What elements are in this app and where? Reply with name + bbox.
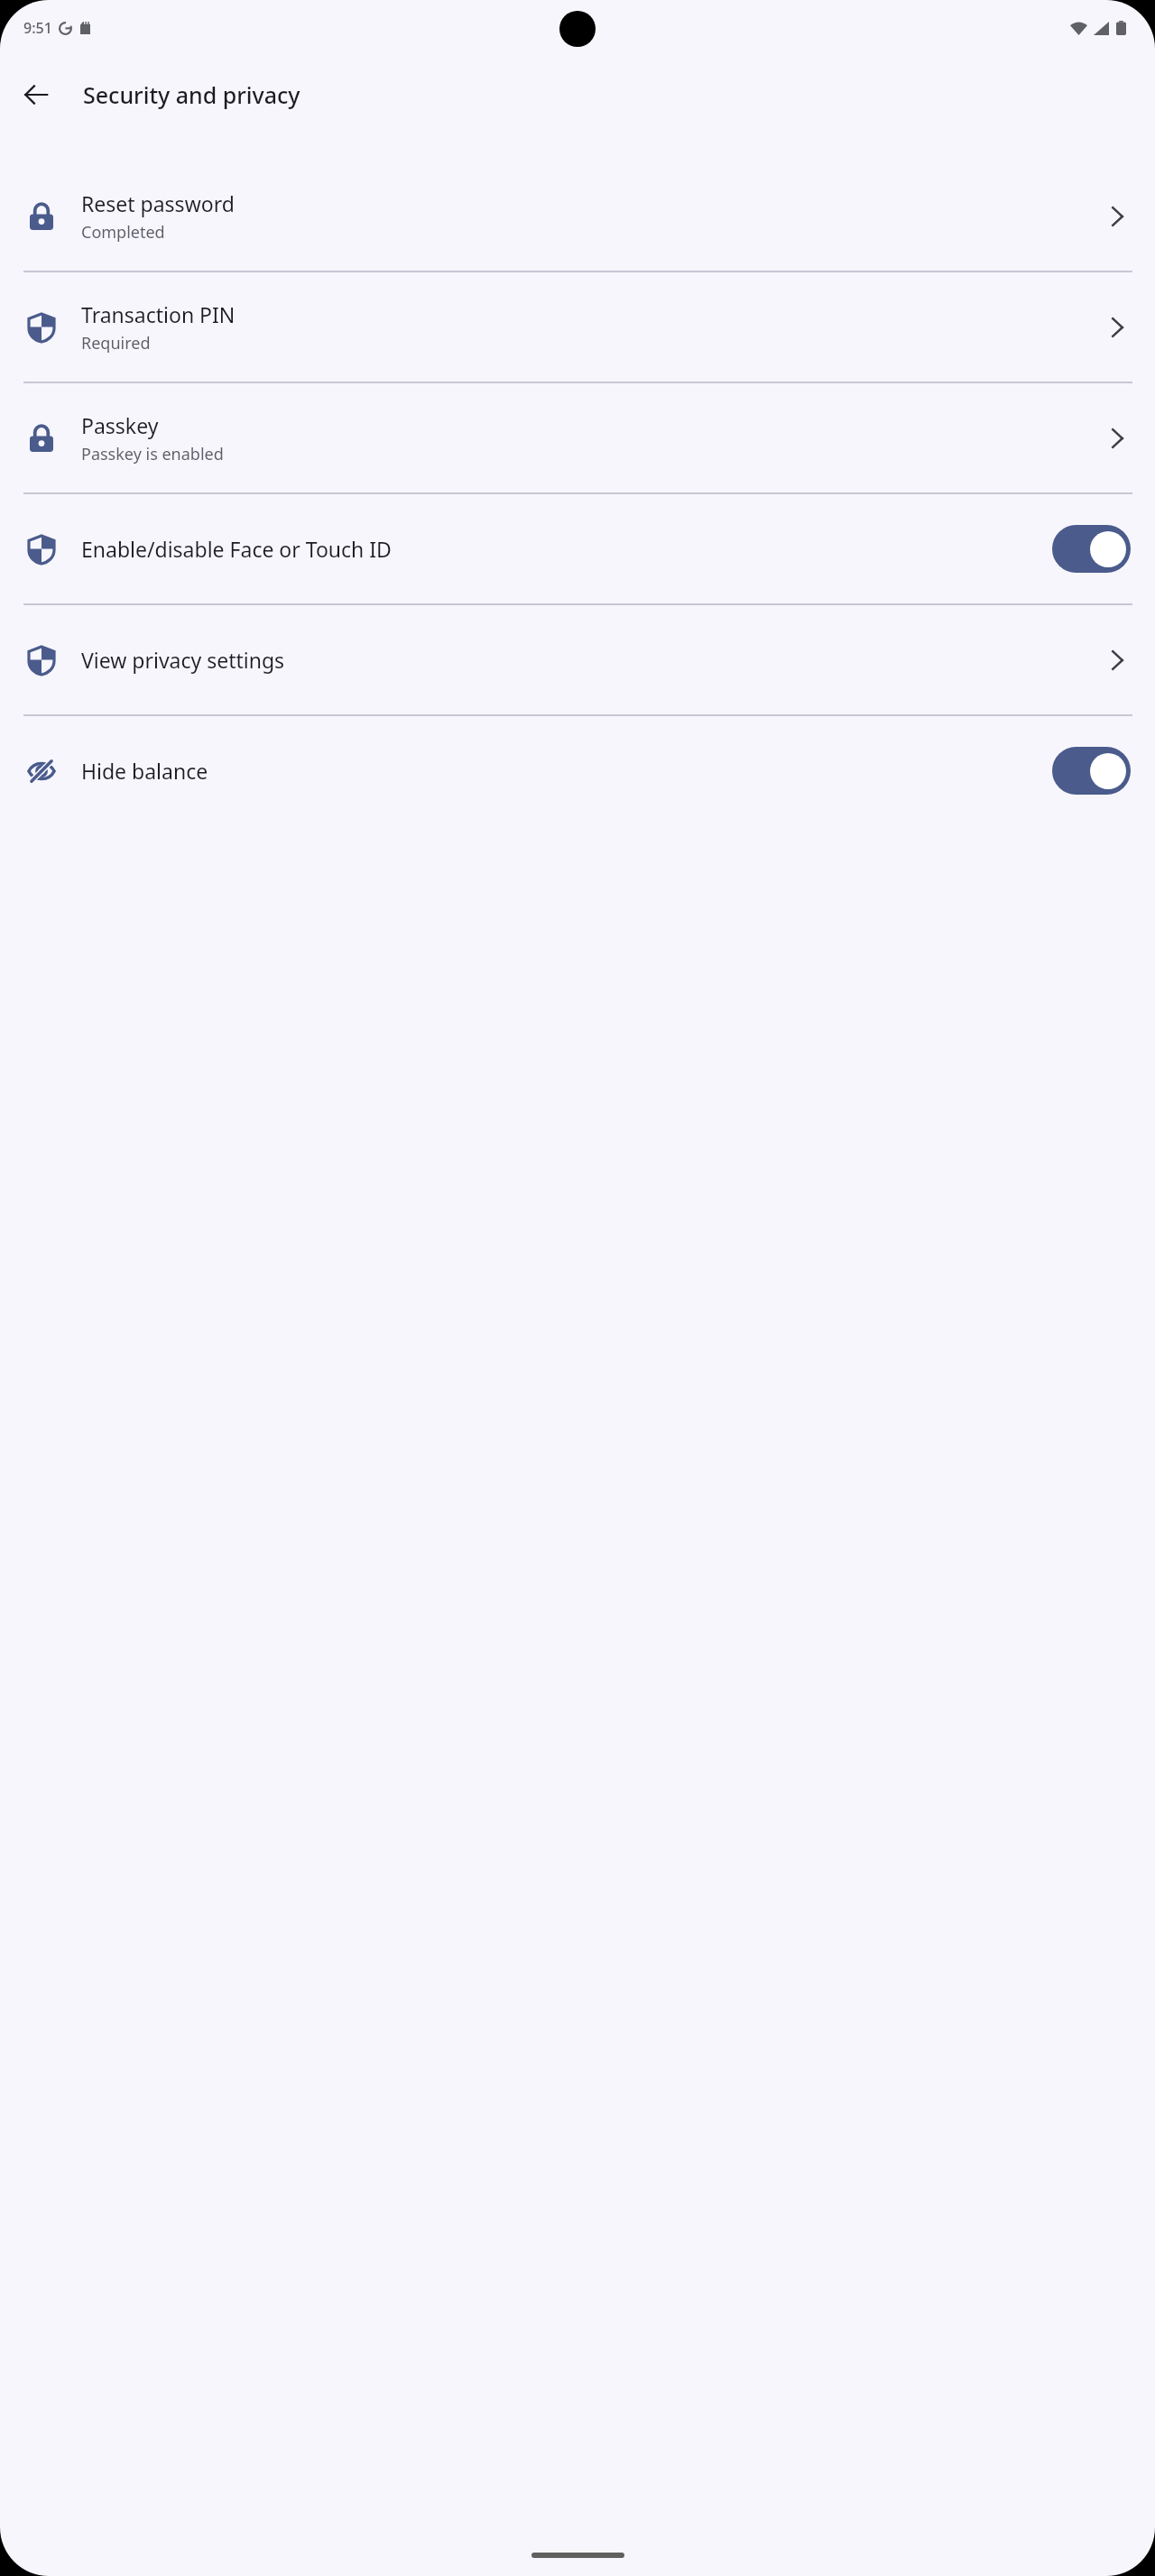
staticText: Passkey: [81, 411, 159, 439]
staticText: Completed: [81, 221, 165, 244]
staticText: Reset password: [81, 189, 235, 217]
staticText: Security and privacy: [83, 79, 300, 110]
staticText: 9:51: [23, 18, 52, 38]
other: Open Transaction PIN: [1104, 314, 1131, 341]
button[interactable]: Hide balance: [0, 716, 1155, 825]
button[interactable]: Back: [11, 69, 61, 120]
staticText: Passkey is enabled: [81, 443, 224, 465]
staticText: View privacy settings: [81, 646, 285, 674]
other: Open View privacy settings: [1104, 647, 1131, 674]
button[interactable]: View privacy settings: [0, 605, 1155, 714]
button[interactable]: Hide balance toggle, on: [1052, 747, 1131, 795]
button[interactable]: Passkey: [0, 383, 1155, 492]
button[interactable]: Enable/disable Face or Touch ID: [0, 494, 1155, 603]
staticText: Required: [81, 332, 151, 354]
other: Open Passkey: [1104, 425, 1131, 452]
button[interactable]: Enable/disable Face or Touch ID toggle, …: [1052, 525, 1131, 573]
other: Open Reset password: [1104, 203, 1131, 230]
staticText: Hide balance: [81, 757, 208, 785]
button[interactable]: Transaction PIN: [0, 272, 1155, 382]
button[interactable]: Reset password: [0, 161, 1155, 271]
staticText: Enable/disable Face or Touch ID: [81, 535, 392, 563]
staticText: Transaction PIN: [81, 300, 236, 328]
